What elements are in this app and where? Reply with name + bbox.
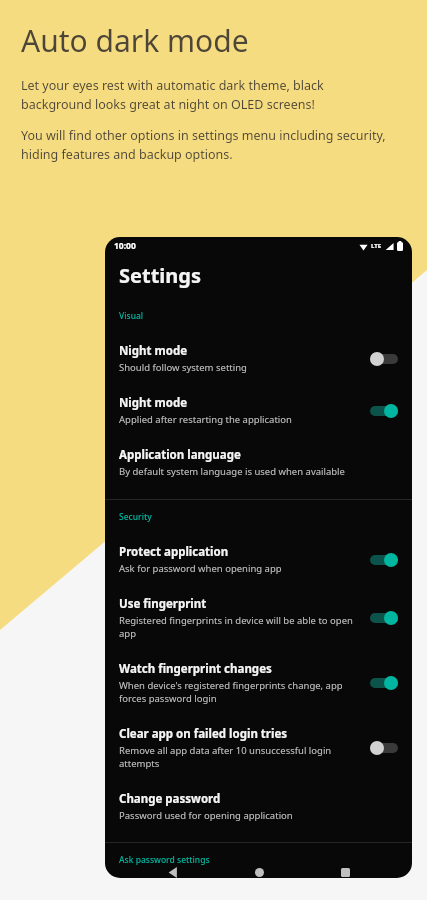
staticText: Use fingerprint (119, 596, 207, 612)
button[interactable]: Use fingerprint (105, 587, 412, 652)
staticText: Security (119, 511, 152, 523)
staticText: By default system language is used when … (119, 465, 345, 478)
staticText: Watch fingerprint changes (119, 661, 272, 677)
staticText: LTE (371, 242, 382, 250)
staticText: 10:00 (114, 240, 136, 252)
staticText: Visual (119, 310, 144, 322)
staticText: Should follow system setting (119, 361, 247, 374)
button[interactable]: Clear app on failed login tries (105, 717, 412, 782)
staticText: Remove all app data after 10 unsuccessfu… (119, 744, 356, 770)
staticText: Applied after restarting the application (119, 413, 292, 426)
button[interactable]: Home (239, 866, 279, 878)
staticText: You will find other options in settings … (21, 127, 389, 163)
staticText: Auto dark mode (21, 20, 249, 61)
staticText: Application language (119, 447, 241, 463)
button[interactable]: Protect application (370, 553, 398, 567)
button[interactable]: Watch fingerprint changes (105, 652, 412, 717)
button[interactable]: Clear app on failed login tries (370, 741, 398, 755)
staticText: Password used for opening application (119, 809, 293, 822)
button[interactable]: Protect application (105, 535, 412, 587)
button[interactable]: Night mode (370, 352, 398, 366)
staticText: Night mode (119, 343, 188, 359)
button[interactable]: Watch fingerprint changes (370, 676, 398, 690)
staticText: Ask password settings (119, 854, 210, 866)
staticText: When device's registered fingerprints ch… (119, 679, 356, 705)
staticText: Protect application (119, 544, 229, 560)
button[interactable]: Back (152, 866, 192, 878)
button[interactable]: Night mode (105, 386, 412, 438)
button[interactable]: Application language (105, 438, 412, 490)
button[interactable]: Change password (105, 782, 412, 834)
button[interactable]: Recents (325, 866, 365, 878)
staticText: Change password (119, 791, 221, 807)
staticText: Clear app on failed login tries (119, 726, 288, 742)
button[interactable]: Night mode (105, 334, 412, 386)
staticText: Night mode (119, 395, 188, 411)
staticText: Let your eyes rest with automatic dark t… (21, 77, 389, 113)
button[interactable]: Night mode (370, 404, 398, 418)
staticText: Registered fingerprints in device will b… (119, 614, 356, 640)
staticText: Ask for password when opening app (119, 562, 282, 575)
button[interactable]: Use fingerprint (370, 611, 398, 625)
staticText: Settings (119, 262, 201, 289)
